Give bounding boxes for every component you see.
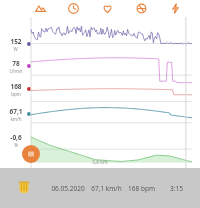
button[interactable]: Heart rate	[90, 0, 124, 17]
staticText: U/min	[9, 68, 23, 74]
button[interactable]: 78	[2, 59, 29, 74]
button[interactable]: Achievement	[0, 168, 200, 208]
button[interactable]: 06.05.2020	[46, 184, 89, 193]
button[interactable]: Time	[57, 0, 90, 17]
staticText: 168 bpm	[128, 184, 155, 193]
button[interactable]: 67,1 km/h	[89, 184, 124, 193]
button[interactable]: Power	[158, 0, 192, 17]
button[interactable]: 168	[2, 82, 29, 97]
button[interactable]: 152	[2, 37, 29, 52]
button[interactable]: 3:15	[159, 184, 194, 193]
staticText: 152	[10, 37, 22, 46]
staticText: km/h	[10, 116, 22, 122]
staticText: 168	[10, 82, 22, 91]
staticText: 67,1	[9, 107, 23, 116]
staticText: 3:15	[170, 184, 183, 193]
staticText: %	[14, 142, 18, 148]
staticText: 67,1 km/h	[91, 184, 122, 193]
staticText: -0,6	[10, 133, 22, 142]
button[interactable]: 67,1	[2, 107, 29, 122]
staticText: 3,6 km	[92, 159, 108, 166]
button[interactable]	[0, 17, 200, 168]
button[interactable]: 168 bpm	[124, 184, 159, 193]
button[interactable]: Altitude	[24, 0, 57, 17]
other: Achievement	[16, 180, 32, 196]
button[interactable]: Cadence	[124, 0, 158, 17]
staticText: W	[13, 46, 18, 52]
staticText: 78	[12, 59, 20, 68]
button[interactable]: -0,6	[2, 133, 29, 148]
staticText: bpm	[11, 91, 21, 97]
staticText: 06.05.2020	[51, 184, 85, 193]
button[interactable]: Pause	[22, 145, 40, 163]
